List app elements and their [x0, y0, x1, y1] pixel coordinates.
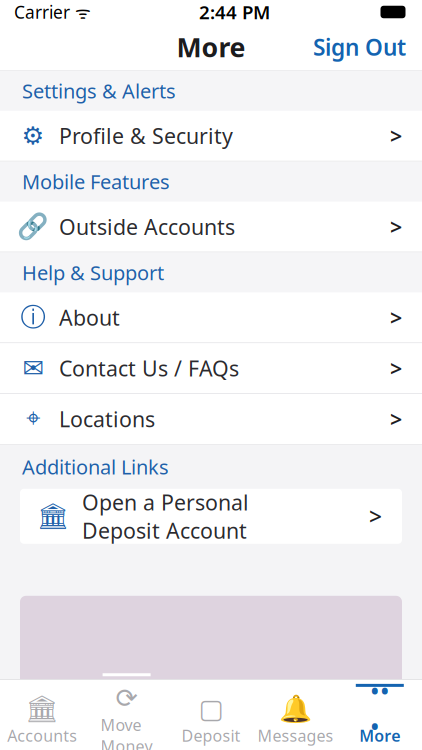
staticText: ⓘ [20, 302, 45, 333]
button[interactable]: 🔗 [0, 202, 422, 252]
staticText: ⚙ [21, 121, 44, 150]
staticText: Help & Support [22, 259, 164, 286]
staticText: About [59, 303, 120, 331]
staticText: 🏛 [25, 694, 59, 724]
staticText: Sign Out [313, 32, 406, 62]
staticText: > [390, 405, 402, 433]
staticText: Deposit [181, 725, 240, 746]
button[interactable]: ⌖ [0, 394, 422, 445]
staticText: > [369, 501, 382, 531]
staticText: > [390, 303, 402, 331]
staticText: Settings & Alerts [22, 77, 176, 104]
button[interactable]: 🏛 [20, 489, 402, 544]
staticText: Open a Personal Deposit Account [82, 488, 249, 545]
staticText: > [390, 122, 402, 150]
staticText: 🔔 [279, 694, 312, 724]
button[interactable]: Sign Out [297, 24, 422, 70]
button[interactable]: ••• [338, 680, 422, 750]
button[interactable]: ⓘ [0, 292, 422, 343]
staticText: ••• [370, 673, 390, 744]
staticText: Move Money [101, 714, 153, 750]
staticText: Accounts [7, 725, 77, 746]
staticText: Contact Us / FAQs [59, 354, 239, 382]
button[interactable]: ⚙ [0, 111, 422, 162]
staticText: ✉ [22, 354, 43, 383]
staticText: More [359, 725, 400, 746]
staticText: 🏛 [37, 502, 69, 531]
staticText: Carrier ᯤ [14, 0, 91, 23]
button[interactable]: ✉ [0, 343, 422, 394]
staticText: 🔗 [17, 212, 49, 241]
staticText: > [390, 212, 402, 241]
button[interactable]: ▢ [169, 680, 253, 750]
staticText: Locations [59, 405, 155, 433]
staticText: Profile & Security [59, 122, 233, 150]
staticText: ▢ [198, 694, 223, 724]
staticText: ⟳ [116, 683, 138, 713]
button[interactable]: ⟳ [84, 680, 169, 750]
button[interactable]: 🔔 [253, 680, 338, 750]
staticText: Outside Accounts [59, 212, 235, 241]
staticText: Additional Links [22, 453, 169, 480]
staticText: Messages [257, 725, 333, 746]
staticText: More [176, 29, 245, 65]
button[interactable]: 🏛 [0, 680, 84, 750]
staticText: Mobile Features [22, 168, 170, 195]
staticText: ⌖ [26, 407, 40, 431]
staticText: > [390, 354, 402, 382]
staticText: 2:44 PM [199, 0, 270, 24]
